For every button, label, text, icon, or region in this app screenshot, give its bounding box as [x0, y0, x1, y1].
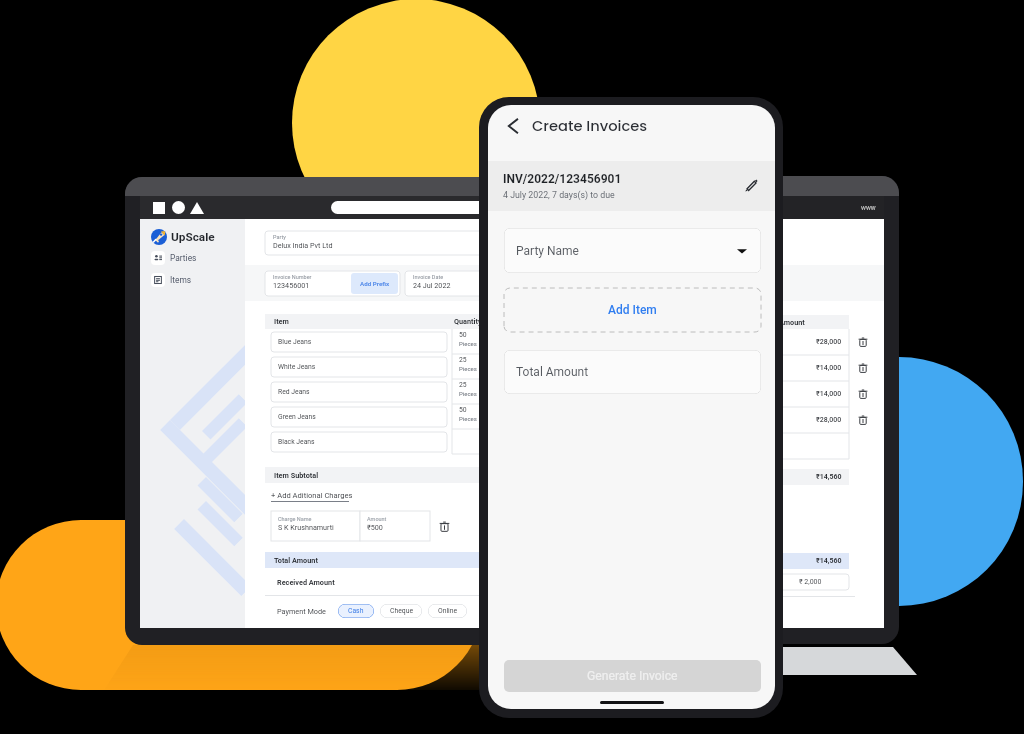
button[interactable]: Party Name [504, 228, 761, 273]
staticText: Create Invoices [532, 116, 648, 137]
staticText: Item [274, 317, 289, 326]
staticText: www [861, 204, 876, 212]
staticText: White Jeans [278, 363, 316, 371]
staticText: Add Item [608, 303, 657, 317]
staticText: Amount [779, 318, 805, 327]
staticText: Amount [367, 516, 387, 522]
button[interactable]: Cheque [380, 604, 422, 618]
button[interactable]: Cash [338, 604, 374, 618]
button[interactable]: Total Amount [504, 350, 761, 394]
staticText: ₹ 2,000 [799, 578, 822, 586]
staticText: UpScale [171, 230, 215, 244]
staticText: Received Amount [277, 578, 335, 587]
staticText: Generate Invoice [587, 669, 678, 683]
staticText: 123456001 [273, 281, 310, 289]
button[interactable]: Generate Invoice [504, 660, 761, 692]
staticText: ₹14,000 [816, 364, 842, 372]
staticText: Invoice Date [413, 274, 444, 280]
staticText: Total Amount [274, 556, 318, 565]
staticText: 50 [459, 331, 467, 339]
staticText: Invoice Number [273, 274, 312, 280]
staticText: Items [170, 275, 192, 285]
button[interactable]: Parties [140, 247, 245, 269]
staticText: Party [273, 234, 286, 240]
staticText: Pieces [459, 340, 477, 347]
staticText: Party Name [516, 244, 579, 258]
staticText: Parties [170, 253, 197, 263]
staticText: Blue Jeans [278, 338, 312, 346]
staticText: Black Jeans [278, 438, 315, 446]
staticText: INV/2022/123456901 [503, 172, 622, 186]
staticText: + Add Aditional Charges [271, 491, 353, 500]
staticText: ₹500 [367, 523, 383, 531]
staticText: 50 [459, 406, 467, 414]
staticText: S K Krushnamurti [278, 523, 334, 531]
button[interactable]: Add Prefix [351, 273, 398, 294]
staticText: Item Subtotal [274, 471, 319, 480]
staticText: 25 [459, 381, 467, 389]
staticText: Red Jeans [278, 388, 310, 396]
button[interactable]: Online [428, 604, 467, 618]
staticText: Delux India Pvt Ltd [273, 241, 333, 249]
button[interactable]: + Add Aditional Charges [271, 491, 353, 500]
button[interactable]: Items [140, 269, 245, 291]
button[interactable]: Add Item [504, 288, 761, 332]
staticText: 4 July 2022, 7 days(s) to due [503, 190, 615, 200]
staticText: Payment Mode [277, 607, 326, 616]
staticText: Quantity [454, 317, 482, 326]
staticText: Online [438, 607, 458, 615]
staticText: ₹28,000 [816, 338, 842, 346]
button[interactable]: Party [265, 231, 670, 255]
staticText: ₹14,560 [816, 473, 842, 481]
staticText: Cash [348, 607, 364, 615]
staticText: Green Jeans [278, 413, 316, 421]
staticText: Total Amount [516, 365, 589, 379]
staticText: Add Prefix [360, 280, 390, 287]
staticText: Pieces [459, 365, 477, 372]
staticText: 25 [459, 356, 467, 364]
staticText: Pieces [459, 415, 477, 422]
button[interactable]: Back [500, 113, 526, 139]
staticText: ₹14,560 [816, 557, 842, 565]
staticText: ₹28,000 [816, 416, 842, 424]
staticText: ₹14,000 [816, 390, 842, 398]
staticText: 24 Jul 2022 [413, 281, 451, 289]
staticText: Pieces [459, 390, 477, 397]
staticText: Charge Name [278, 516, 312, 522]
staticText: Cheque [390, 607, 413, 615]
button[interactable]: Edit [739, 174, 763, 198]
